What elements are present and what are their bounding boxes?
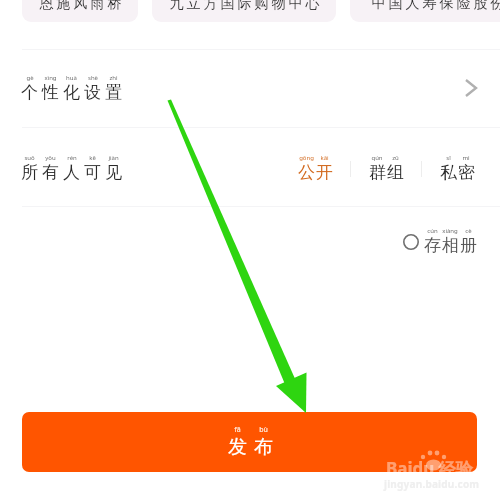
staticText: 设 xyxy=(84,82,101,103)
button[interactable]: 个性化设置 xyxy=(458,73,484,103)
staticText: 私 xyxy=(440,162,457,183)
staticText: kāi xyxy=(320,154,329,162)
staticText: 存 xyxy=(424,235,441,256)
button[interactable]: cún xyxy=(399,223,481,260)
staticText: 发 xyxy=(228,435,247,459)
staticText: 密 xyxy=(458,162,475,183)
staticText: xìng xyxy=(44,74,57,82)
staticText: 组 xyxy=(387,162,404,183)
staticText: suǒ xyxy=(24,154,35,162)
staticText: huà xyxy=(66,74,77,82)
staticText: 有 xyxy=(42,162,59,183)
staticText: qún xyxy=(371,154,383,162)
staticText: 相 xyxy=(442,235,459,256)
staticText: cún xyxy=(427,227,438,235)
button[interactable]: qún xyxy=(351,154,421,183)
button[interactable]: sī xyxy=(422,154,492,183)
staticText: rén xyxy=(67,154,77,162)
staticText: yǒu xyxy=(45,154,56,162)
staticText: 个 xyxy=(21,82,38,103)
staticText: 中国人寿保险股份有限 xyxy=(370,0,500,13)
staticText: 见 xyxy=(105,162,122,183)
staticText: zǔ xyxy=(392,154,399,162)
button[interactable]: 中国人寿保险股份有限 xyxy=(350,0,500,22)
staticText: 可 xyxy=(84,162,101,183)
staticText: 恩施风雨桥 xyxy=(38,0,123,13)
staticText: 开 xyxy=(316,162,333,183)
staticText: 公 xyxy=(298,162,315,183)
staticText: 化 xyxy=(63,82,80,103)
staticText: cè xyxy=(465,227,472,235)
button[interactable]: 恩施风雨桥 xyxy=(22,0,138,22)
button[interactable]: 九立方国际购物中心 xyxy=(152,0,336,22)
staticText: zhì xyxy=(109,74,118,82)
staticText: 册 xyxy=(460,235,477,256)
staticText: shè xyxy=(88,74,98,82)
button[interactable]: gè xyxy=(0,50,500,127)
staticText: kě xyxy=(89,154,96,162)
staticText: 置 xyxy=(105,82,122,103)
button[interactable]: gōng xyxy=(280,154,350,183)
staticText: Baidu 经验 xyxy=(386,457,473,480)
staticText: 性 xyxy=(42,82,59,103)
staticText: 所 xyxy=(21,162,38,183)
button[interactable]: fā xyxy=(22,412,477,472)
staticText: 九立方国际购物中心 xyxy=(168,0,321,13)
staticText: 群 xyxy=(369,162,386,183)
staticText: fā xyxy=(234,425,241,435)
staticText: mì xyxy=(462,154,470,162)
staticText: gè xyxy=(26,74,34,82)
staticText: 布 xyxy=(254,435,273,459)
staticText: 人 xyxy=(63,162,80,183)
staticText: gōng xyxy=(299,154,314,162)
staticText: bù xyxy=(259,425,268,435)
staticText: xiàng xyxy=(442,227,458,235)
staticText: jiàn xyxy=(108,154,119,162)
staticText: jingyan.baidu.com xyxy=(384,477,480,491)
staticText: sī xyxy=(446,154,451,162)
